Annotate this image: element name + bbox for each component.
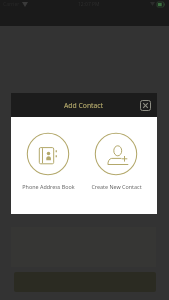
- staticText: Phone Address Book: [22, 183, 75, 190]
- staticText: Create New Contact: [91, 183, 142, 190]
- staticText: 12:07 PM: [78, 1, 100, 8]
- button[interactable]: Create New Contact: [79, 117, 153, 190]
- button[interactable]: Phone Address Book: [11, 117, 85, 190]
- staticText: Add Contact: [64, 101, 104, 110]
- button[interactable]: Close: [140, 100, 151, 111]
